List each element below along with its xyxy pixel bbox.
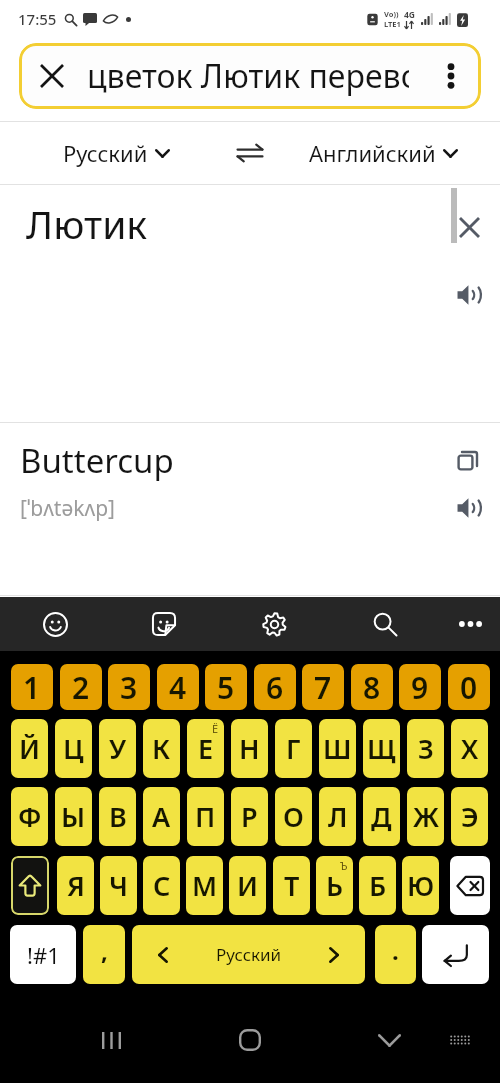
staticText: 0 [460, 667, 478, 708]
button[interactable]: Ш [319, 719, 356, 778]
button[interactable]: М [186, 856, 223, 915]
staticText: Ш [323, 730, 352, 767]
button[interactable]: У [99, 719, 136, 778]
button[interactable]: 1 [11, 664, 53, 710]
button[interactable]: Ы [55, 787, 92, 846]
staticText: С [153, 867, 171, 904]
button[interactable]: Listen to source [452, 277, 488, 313]
button[interactable]: Я [57, 856, 94, 915]
button[interactable]: Ф [11, 787, 48, 846]
button[interactable]: Enter [422, 925, 489, 984]
button[interactable]: 7 [302, 664, 344, 710]
staticText: !#1 [27, 940, 60, 970]
staticText: Русский [216, 943, 282, 966]
button[interactable]: К [143, 719, 180, 778]
staticText: Т [284, 867, 300, 904]
button[interactable]: Copy translation [451, 443, 485, 477]
button[interactable]: Keyboard settings [247, 597, 301, 651]
button[interactable]: Shift [11, 856, 49, 915]
button[interactable]: В [99, 787, 136, 846]
staticText: 8 [363, 667, 381, 708]
staticText: 3 [120, 667, 138, 708]
staticText: Ь [326, 867, 344, 904]
staticText: Г [286, 730, 301, 767]
button[interactable]: Ч [100, 856, 137, 915]
button[interactable]: 6 [254, 664, 296, 710]
staticText: Ы [61, 798, 86, 835]
button[interactable]: , [83, 925, 125, 984]
staticText: Ч [109, 867, 128, 904]
button[interactable]: А [143, 787, 180, 846]
button[interactable]: П [187, 787, 224, 846]
button[interactable]: И [229, 856, 266, 915]
button[interactable]: 2 [60, 664, 102, 710]
staticText: М [192, 867, 218, 904]
button[interactable]: Search [358, 597, 412, 651]
staticText: В [109, 798, 127, 835]
button[interactable]: More options [443, 597, 497, 651]
button[interactable]: Emoji [28, 597, 82, 651]
staticText: 4 [169, 667, 187, 708]
button[interactable]: Ю [402, 856, 439, 915]
button[interactable]: Ц [55, 719, 92, 778]
button[interactable]: Swap languages [219, 121, 281, 185]
button[interactable]: Русский [132, 925, 365, 984]
button[interactable]: Н [231, 719, 268, 778]
staticText: Н [239, 730, 260, 767]
staticText: Б [369, 867, 387, 904]
button[interactable]: Р [231, 787, 268, 846]
staticText: Ц [63, 730, 84, 767]
button[interactable]: Э [451, 787, 488, 846]
staticText: Щ [367, 730, 396, 767]
button[interactable]: З [407, 719, 444, 778]
button[interactable]: More options [429, 54, 473, 98]
button[interactable]: 4 [157, 664, 199, 710]
button[interactable]: Английский [301, 121, 465, 185]
staticText: Русский [63, 138, 148, 168]
button[interactable]: Home [227, 1017, 273, 1063]
button[interactable]: 8 [351, 664, 393, 710]
button[interactable]: Hide keyboard [366, 1017, 412, 1063]
staticText: 4G [404, 9, 416, 21]
button[interactable]: Т [273, 856, 310, 915]
staticText: Vo)) [384, 9, 399, 19]
button[interactable]: Д [363, 787, 400, 846]
button[interactable]: С [143, 856, 180, 915]
button[interactable]: Ж [407, 787, 444, 846]
staticText: Л [328, 798, 348, 835]
staticText: LTE1 [384, 19, 401, 29]
button[interactable]: Ь [316, 856, 353, 915]
staticText: , [101, 934, 108, 967]
staticText: Buttercup [20, 438, 174, 483]
staticText: Х [461, 730, 479, 767]
button[interactable]: Л [319, 787, 356, 846]
staticText: 5 [217, 667, 235, 708]
staticText: Ж [413, 798, 439, 835]
button[interactable]: Щ [363, 719, 400, 778]
button[interactable]: 9 [399, 664, 441, 710]
button[interactable]: Clear text [452, 210, 486, 244]
button[interactable]: Х [451, 719, 488, 778]
button[interactable]: Й [11, 719, 48, 778]
staticText: Ё [212, 721, 219, 736]
staticText: Лютик [26, 197, 148, 250]
button[interactable]: Русский [58, 121, 174, 185]
button[interactable]: Backspace [450, 856, 490, 915]
button[interactable]: Listen to translation [452, 490, 488, 526]
staticText: П [195, 798, 216, 835]
button[interactable]: Stickers [137, 597, 191, 651]
button[interactable]: Б [359, 856, 396, 915]
button[interactable]: О [275, 787, 312, 846]
button[interactable]: !#1 [10, 925, 76, 984]
staticText: У [109, 730, 127, 767]
button[interactable]: Е [187, 719, 224, 778]
button[interactable]: Г [275, 719, 312, 778]
staticText: А [152, 798, 171, 835]
button[interactable]: 5 [205, 664, 247, 710]
button[interactable]: Switch keyboard [440, 1020, 480, 1060]
button[interactable]: Recents [88, 1017, 134, 1063]
button[interactable]: Clear query [28, 52, 76, 100]
button[interactable]: 0 [448, 664, 490, 710]
button[interactable]: 3 [108, 664, 150, 710]
button[interactable]: . [375, 925, 416, 984]
